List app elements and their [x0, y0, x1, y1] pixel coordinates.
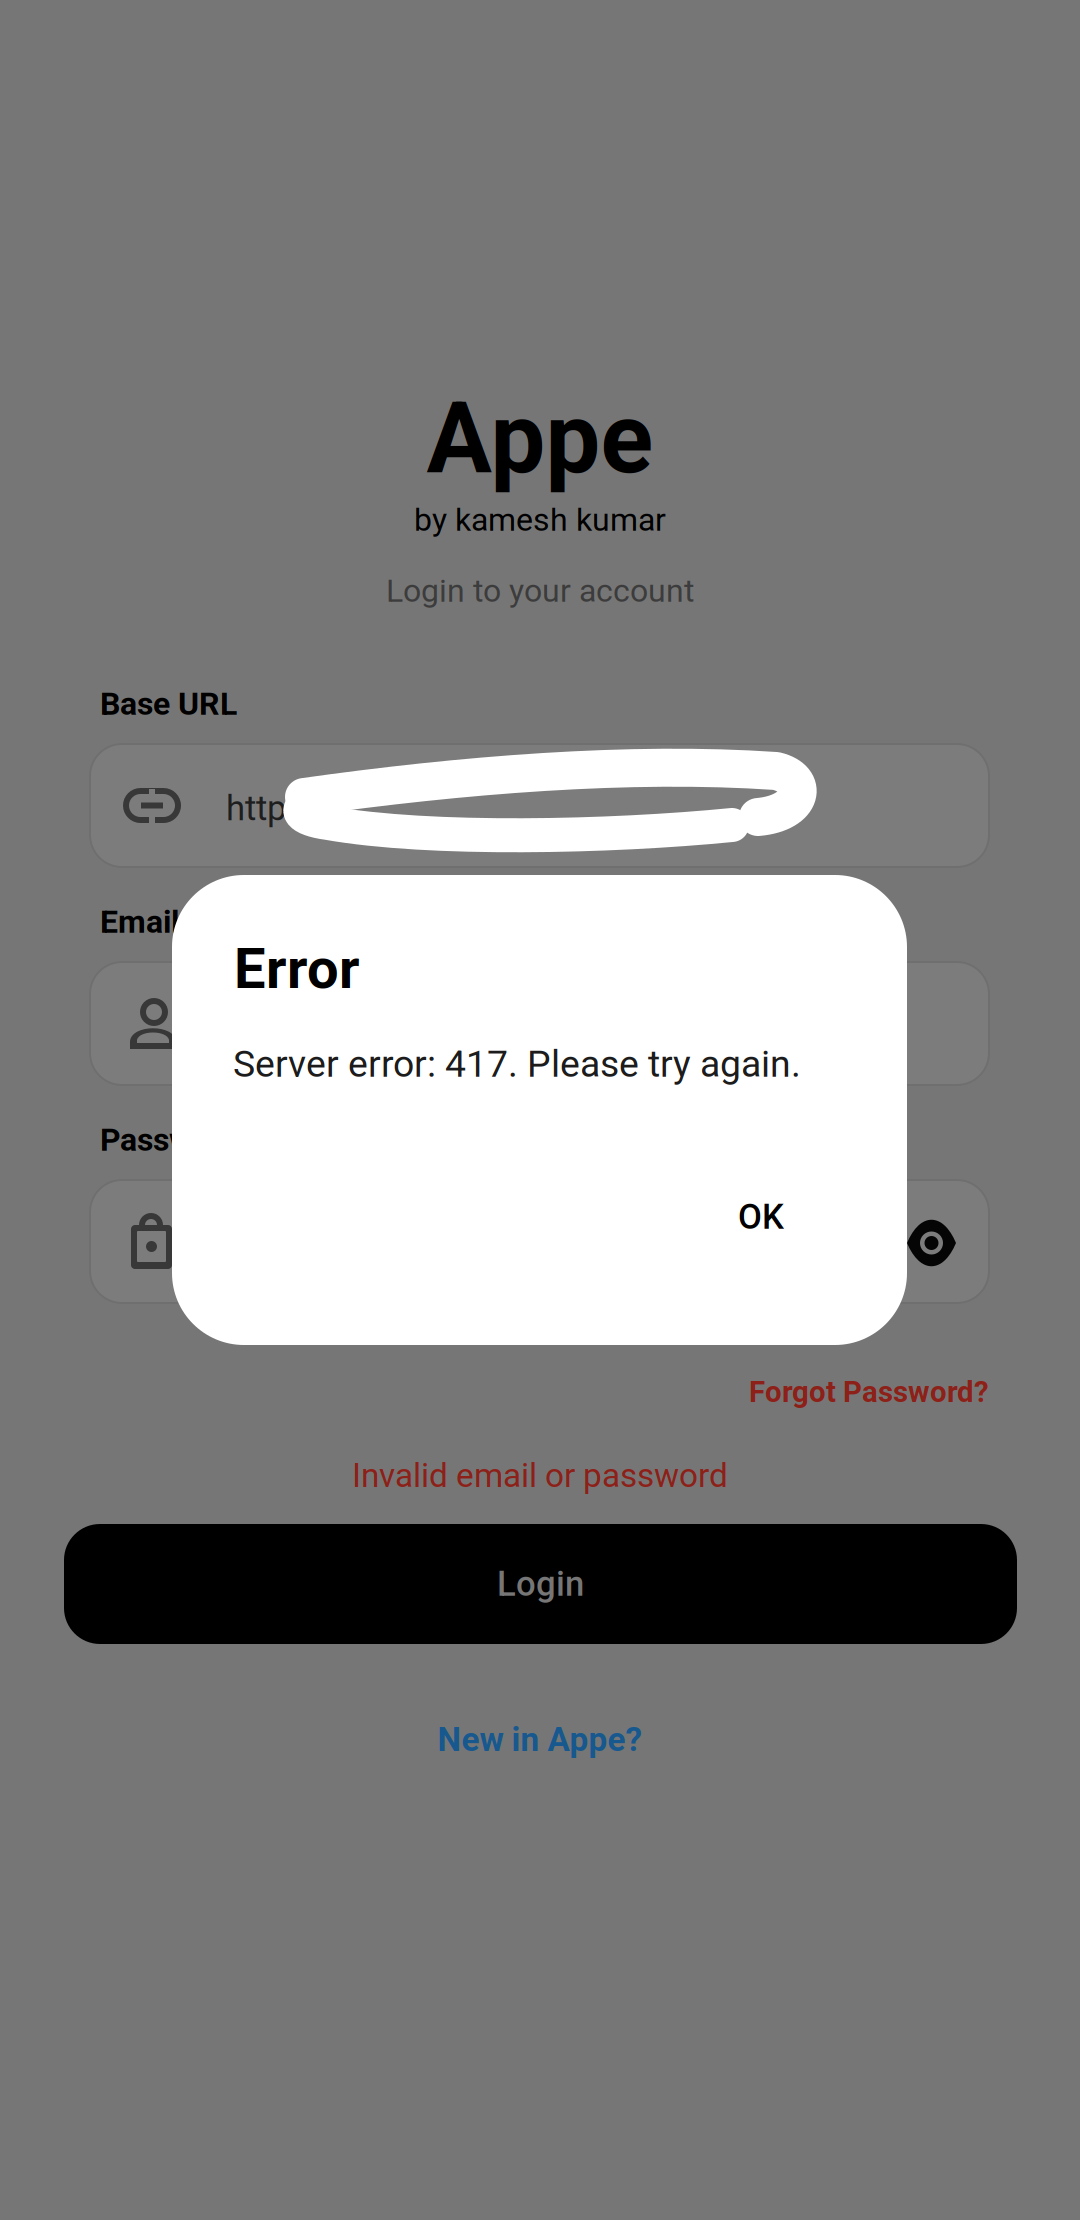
staticText: New in Appe?: [437, 1720, 642, 1759]
staticText: Base URL: [100, 685, 237, 722]
staticText: OK: [738, 1197, 784, 1237]
staticText: Forgot Password?: [749, 1375, 989, 1409]
staticText: Password: [100, 1121, 240, 1158]
staticText: Login to your account: [386, 572, 694, 609]
staticText: by kamesh kumar: [414, 501, 666, 538]
staticText: https: [226, 788, 304, 829]
staticText: Appe: [426, 382, 653, 496]
button[interactable]: OK: [224, 1177, 784, 1257]
staticText: Invalid email or password: [352, 1456, 728, 1495]
button[interactable]: Login: [64, 1524, 1017, 1644]
staticText: Server error: 417. Please try again.: [233, 1042, 801, 1086]
staticText: Error: [234, 936, 360, 1002]
staticText: Login: [497, 1564, 584, 1604]
button[interactable]: Forgot Password?: [90, 1369, 989, 1415]
staticText: Email: [100, 903, 179, 940]
